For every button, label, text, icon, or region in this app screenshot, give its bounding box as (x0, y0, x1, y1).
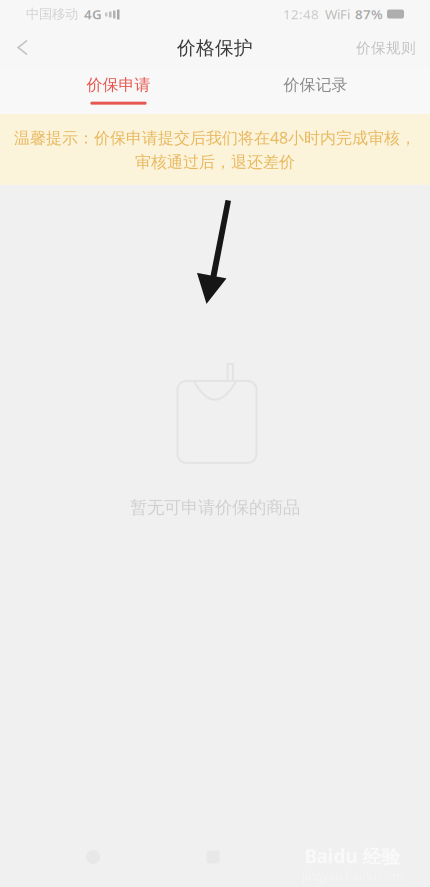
staticText: 中国移动 (26, 6, 78, 22)
staticText: 审核通过后，退还差价 (135, 152, 295, 172)
staticText: 87% (355, 5, 383, 23)
button[interactable]: 返回 (0, 28, 46, 68)
staticText: 4G (84, 5, 102, 23)
staticText: WiFi (325, 5, 350, 23)
staticText: 暂无可申请价保的商品 (130, 497, 300, 518)
staticText: 价保规则 (356, 39, 416, 57)
staticText: 12:48 (283, 5, 319, 23)
staticText: 价格保护 (177, 36, 253, 59)
button[interactable]: 价保申请 (20, 68, 217, 114)
button[interactable]: 价保规则 (342, 28, 430, 68)
staticText: Baidu 经验 (304, 844, 400, 868)
staticText: 温馨提示：价保申请提交后我们将在48小时内完成审核， (14, 127, 416, 148)
button[interactable]: 价保记录 (217, 68, 414, 114)
staticText: 价保记录 (283, 75, 347, 95)
staticText: 价保申请 (86, 75, 150, 95)
